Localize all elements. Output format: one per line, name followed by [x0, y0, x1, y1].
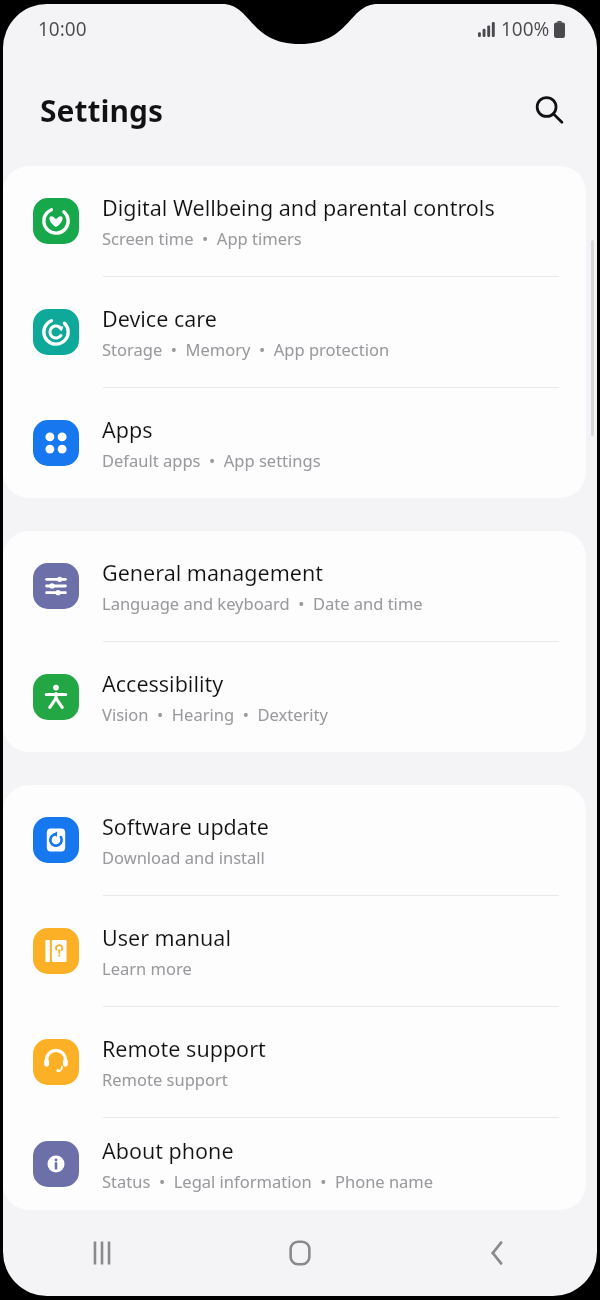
staticText: Software update [102, 812, 269, 841]
staticText: Settings [40, 90, 163, 131]
staticText: Apps [102, 415, 153, 444]
button[interactable]: Search [525, 86, 573, 134]
staticText: Digital Wellbeing and parental controls [102, 193, 495, 222]
staticText: Learn more [102, 957, 192, 979]
button[interactable]: Software update [3, 785, 586, 896]
staticText: Device care [102, 304, 217, 333]
button[interactable]: Remote support [3, 1007, 586, 1118]
staticText: Download and install [102, 846, 265, 868]
staticText: Remote support [102, 1068, 228, 1090]
button[interactable]: Device care [3, 277, 586, 388]
staticText: 100% [501, 16, 550, 42]
staticText: Default apps • App settings [102, 449, 321, 471]
staticText: General management [102, 558, 323, 587]
button[interactable]: Home [201, 1210, 399, 1296]
staticText: Remote support [102, 1034, 266, 1063]
staticText: Status • Legal information • Phone name [102, 1170, 434, 1192]
staticText: Screen time • App timers [102, 227, 302, 249]
staticText: About phone [102, 1136, 234, 1165]
staticText: Vision • Hearing • Dexterity [102, 703, 328, 725]
button[interactable]: General management [3, 531, 586, 642]
button[interactable]: Digital Wellbeing and parental controls [3, 166, 586, 277]
button[interactable]: About phone [3, 1118, 586, 1210]
button[interactable]: User manual [3, 896, 586, 1007]
staticText: Accessibility [102, 669, 224, 698]
button[interactable]: Back [399, 1210, 597, 1296]
staticText: Storage • Memory • App protection [102, 338, 390, 360]
button[interactable]: Recent apps [3, 1210, 201, 1296]
button[interactable]: Accessibility [3, 642, 586, 752]
staticText: 10:00 [38, 16, 87, 42]
staticText: Language and keyboard • Date and time [102, 592, 423, 614]
button[interactable]: Apps [3, 388, 586, 498]
staticText: User manual [102, 923, 231, 952]
